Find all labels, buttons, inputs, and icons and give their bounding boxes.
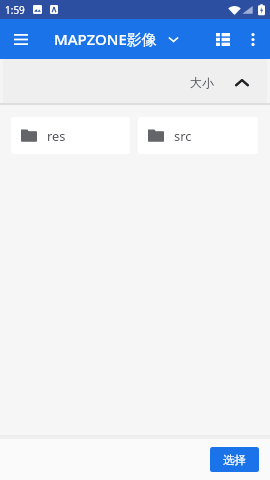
button[interactable]: 大小 [182,62,257,102]
button[interactable]: List view [206,22,240,56]
button[interactable]: More options [236,22,270,56]
button[interactable]: Show more [162,28,184,50]
staticText: 选择 [223,453,246,467]
button[interactable]: 选择 [210,447,259,472]
staticText: src [174,127,192,144]
button[interactable]: res [11,117,130,154]
staticText: MAPZONE影像 [54,29,157,49]
staticText: 1:59 [5,3,25,17]
staticText: res [47,127,66,144]
button[interactable]: src [138,117,258,154]
button[interactable]: Navigation menu [6,24,36,54]
staticText: 大小 [190,75,214,90]
